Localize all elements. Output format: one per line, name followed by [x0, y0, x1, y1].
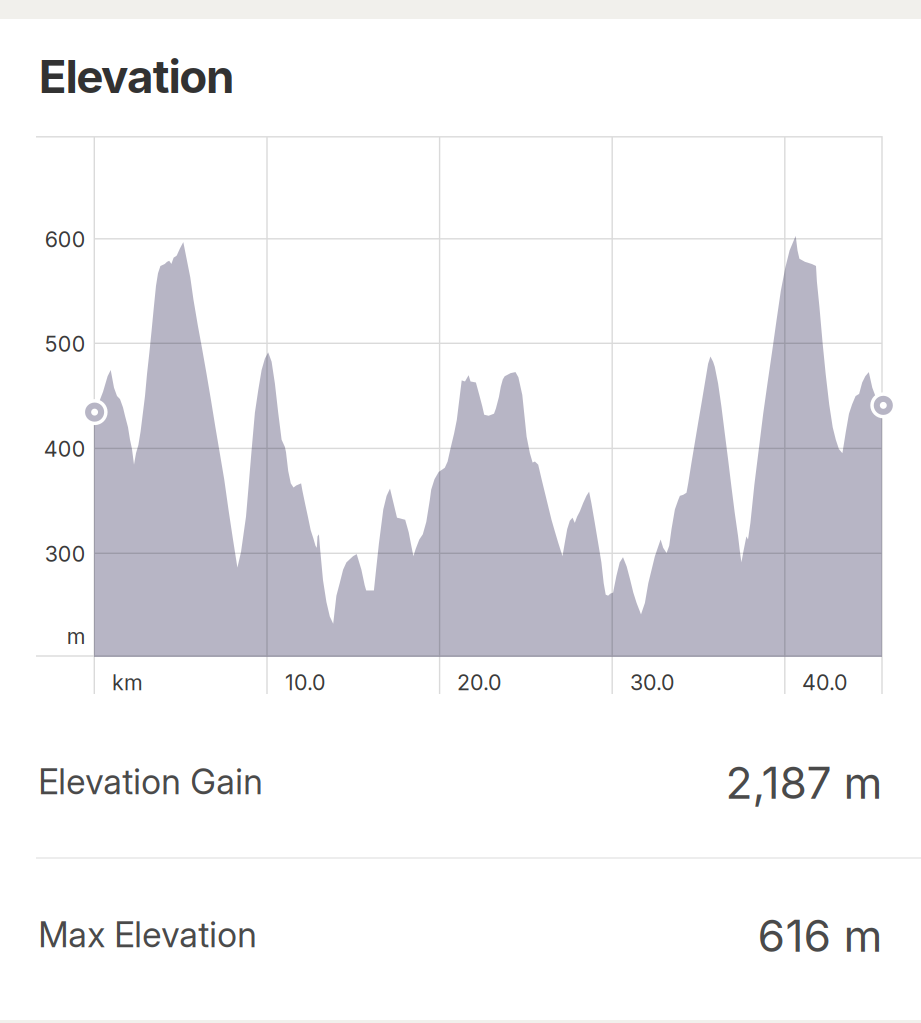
staticText: 600	[45, 226, 86, 252]
staticText: 300	[45, 541, 86, 567]
staticText: 20.0	[457, 669, 502, 695]
staticText: 2,187 m	[726, 756, 883, 809]
staticText: 40.0	[802, 669, 848, 695]
staticText: km	[112, 669, 143, 695]
staticText: Elevation	[39, 49, 234, 104]
staticText: Max Elevation	[38, 913, 257, 955]
staticText: 616 m	[758, 909, 883, 962]
staticText: 10.0	[285, 669, 326, 695]
staticText: 500	[45, 331, 86, 357]
staticText: 30.0	[630, 669, 675, 695]
staticText: Elevation Gain	[38, 760, 263, 802]
staticText: 400	[44, 436, 86, 462]
staticText: m	[67, 623, 86, 649]
